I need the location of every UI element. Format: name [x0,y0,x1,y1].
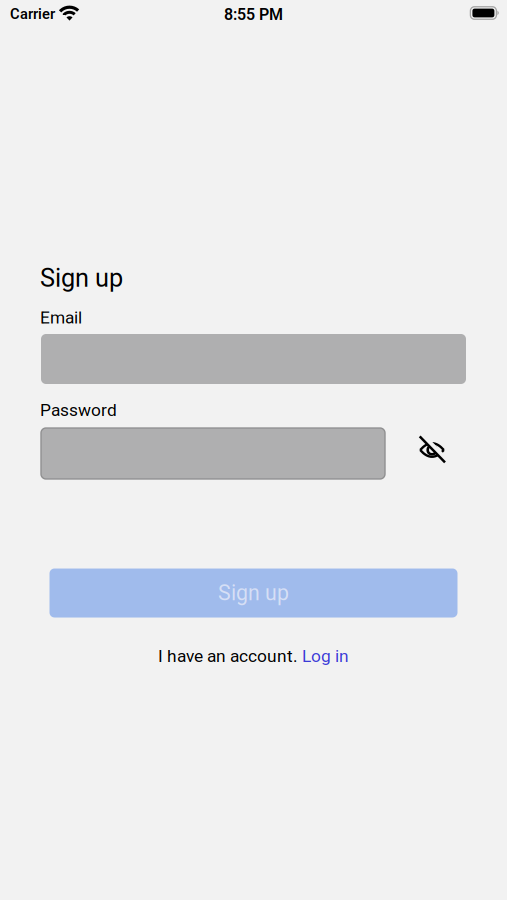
staticText: Email [40,308,82,327]
staticText: Carrier [10,6,55,22]
button[interactable]: Sign up [49,568,457,617]
staticText: Password [40,400,117,420]
button[interactable]: Password [41,428,385,479]
staticText: 8:55 PM [224,5,283,24]
staticText: Sign up [218,581,289,605]
button[interactable]: Log in [302,646,349,666]
staticText: Sign up [40,263,123,292]
button[interactable]: Show password [419,436,445,463]
staticText: I have an account. [158,646,302,666]
staticText: Log in [302,646,349,666]
